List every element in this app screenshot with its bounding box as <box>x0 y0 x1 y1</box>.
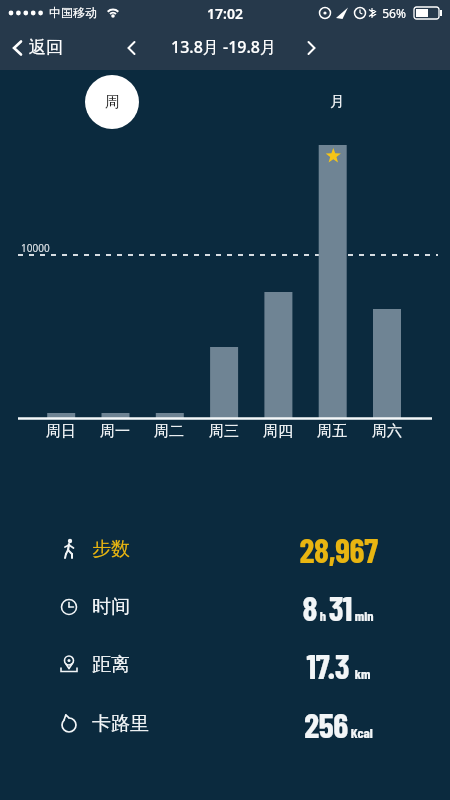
staticText: 10000 <box>21 241 50 255</box>
staticText: 周三 <box>209 422 239 441</box>
button[interactable] <box>120 25 144 70</box>
button[interactable]: 步数 <box>56 529 400 569</box>
staticText: 返回 <box>29 37 63 58</box>
button[interactable] <box>299 25 323 70</box>
staticText: 28,967 <box>299 529 378 570</box>
button[interactable]: 距离 <box>56 645 400 685</box>
button[interactable]: 月 <box>310 75 364 129</box>
staticText: 周 <box>105 93 120 112</box>
staticText: 8 h 31 min <box>302 587 374 628</box>
button[interactable]: 返回 <box>10 25 63 70</box>
button[interactable]: 周 <box>85 75 139 129</box>
staticText: 13.8月 -19.8月 <box>171 36 276 58</box>
staticText: 距离 <box>92 653 130 677</box>
staticText: 周六 <box>372 422 402 441</box>
button[interactable]: 卡路里 <box>56 704 400 744</box>
staticText: 中国移动 <box>49 5 97 20</box>
staticText: 17:02 <box>207 4 243 23</box>
staticText: 256 Kcal <box>304 704 373 745</box>
staticText: 周五 <box>317 422 347 441</box>
button[interactable]: 时间 <box>56 587 400 627</box>
staticText: 周一 <box>100 422 130 441</box>
staticText: 时间 <box>92 595 130 619</box>
staticText: 周二 <box>154 422 184 441</box>
staticText: 步数 <box>92 537 130 561</box>
staticText: 周四 <box>263 422 293 441</box>
staticText: 周日 <box>46 422 76 441</box>
staticText: 卡路里 <box>92 712 149 736</box>
staticText: 17.3 km <box>306 645 371 686</box>
staticText: 月 <box>330 93 344 111</box>
staticText: 56% <box>382 5 406 21</box>
